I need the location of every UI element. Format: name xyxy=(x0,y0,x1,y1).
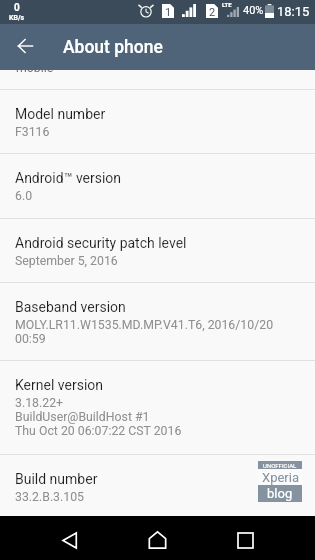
staticText: UNOFFICIAL xyxy=(263,462,297,469)
staticText: Baseband version xyxy=(15,299,126,315)
staticText: mobile xyxy=(16,61,54,75)
staticText: 33.2.B.3.105 xyxy=(15,490,85,504)
button[interactable]: Android™ version xyxy=(0,154,315,218)
button[interactable]: Home xyxy=(135,518,180,560)
staticText: Thu Oct 20 06:07:22 CST 2016 xyxy=(15,424,182,438)
staticText: KB/s xyxy=(9,14,25,22)
staticText: 3.18.22+ xyxy=(15,396,64,410)
staticText: 40% xyxy=(243,4,264,17)
button[interactable]: Build number xyxy=(0,455,315,517)
staticText: About phone xyxy=(63,37,163,58)
button[interactable]: Kernel version xyxy=(0,361,315,454)
staticText: 1 xyxy=(165,6,172,19)
staticText: September 5, 2016 xyxy=(15,254,118,268)
button[interactable]: Recent apps xyxy=(223,518,268,560)
staticText: 00:59 xyxy=(15,332,46,346)
button[interactable]: Back xyxy=(48,518,93,560)
button[interactable]: Back xyxy=(3,24,47,68)
staticText: Xperia xyxy=(262,470,299,485)
staticText: Android™ version xyxy=(15,170,122,186)
staticText: LTE xyxy=(222,1,232,8)
staticText: 0 xyxy=(14,2,20,14)
staticText: BuildUser@BuildHost #1 xyxy=(15,410,150,424)
button[interactable]: Model number xyxy=(0,90,315,153)
staticText: MOLY.LR11.W1535.MD.MP.V41.T6, 2016/10/20 xyxy=(15,318,274,332)
staticText: 18:15 xyxy=(277,4,310,19)
button[interactable]: Android security patch level xyxy=(0,219,315,282)
staticText: 6.0 xyxy=(15,189,33,203)
staticText: Kernel version xyxy=(15,377,104,393)
staticText: Model number xyxy=(15,106,106,122)
staticText: F3116 xyxy=(15,125,50,139)
staticText: blog xyxy=(267,486,293,501)
staticText: Android security patch level xyxy=(15,235,187,251)
staticText: 2 xyxy=(209,6,216,19)
staticText: Build number xyxy=(15,471,98,487)
button[interactable]: Baseband version xyxy=(0,283,315,360)
